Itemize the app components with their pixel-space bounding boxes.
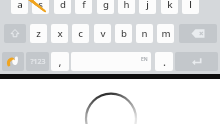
- button[interactable]: m: [157, 24, 174, 43]
- staticText: s: [38, 0, 43, 11]
- staticText: z: [36, 27, 41, 40]
- staticText: m: [161, 27, 171, 40]
- button[interactable]: n: [136, 24, 153, 43]
- staticText: f: [82, 0, 86, 11]
- button[interactable]: s: [32, 0, 49, 14]
- staticText: v: [100, 27, 106, 40]
- button[interactable]: j: [139, 0, 156, 14]
- staticText: n: [141, 27, 148, 40]
- button[interactable]: h: [118, 0, 135, 14]
- staticText: d: [60, 0, 66, 11]
- button[interactable]: b: [115, 24, 132, 43]
- button[interactable]: f: [75, 0, 92, 14]
- button[interactable]: .: [155, 52, 173, 71]
- staticText: .: [163, 54, 166, 69]
- button[interactable]: l: [182, 0, 199, 14]
- staticText: j: [146, 0, 149, 11]
- button[interactable]: ,: [51, 52, 69, 71]
- button[interactable]: g: [97, 0, 114, 14]
- staticText: EN: [141, 56, 148, 63]
- button[interactable]: Backspace: [179, 24, 217, 43]
- staticText: l: [189, 0, 192, 11]
- staticText: ,: [58, 54, 62, 69]
- button[interactable]: d: [54, 0, 71, 14]
- button[interactable]: k: [161, 0, 178, 14]
- staticText: b: [121, 27, 127, 40]
- staticText: ?123: [30, 57, 46, 67]
- button[interactable]: c: [72, 24, 89, 43]
- staticText: k: [167, 0, 173, 11]
- button[interactable]: Enter: [175, 52, 218, 71]
- button[interactable]: Shift: [4, 24, 26, 43]
- button[interactable]: z: [30, 24, 47, 43]
- button[interactable]: EN: [71, 52, 151, 71]
- button[interactable]: ?123: [26, 52, 49, 71]
- staticText: g: [103, 0, 109, 11]
- staticText: h: [123, 0, 130, 11]
- button[interactable]: a: [11, 0, 28, 14]
- staticText: x: [57, 27, 63, 40]
- staticText: a: [17, 0, 23, 11]
- button[interactable]: x: [51, 24, 68, 43]
- button[interactable]: Swype: [2, 52, 24, 71]
- staticText: c: [78, 27, 83, 40]
- button[interactable]: v: [94, 24, 111, 43]
